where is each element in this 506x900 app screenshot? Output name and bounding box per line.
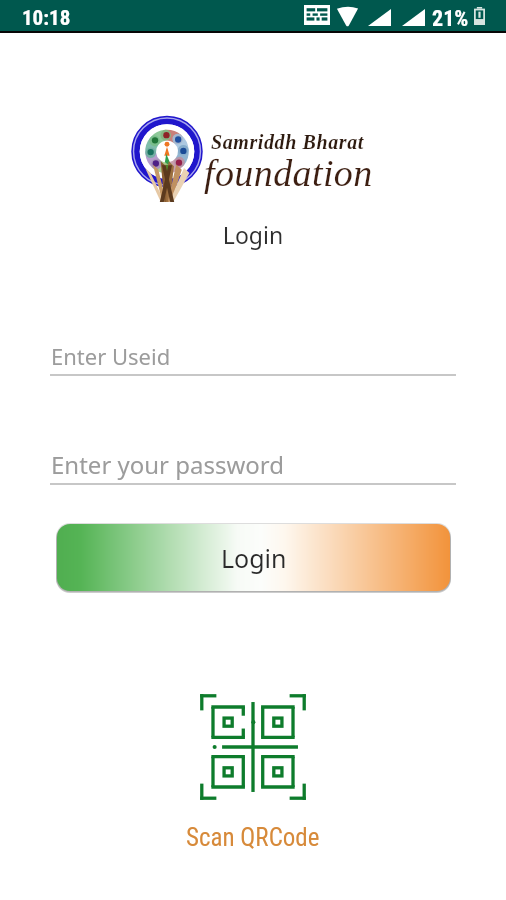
staticText: Login bbox=[0, 219, 506, 250]
staticText: Scan QRCode bbox=[186, 823, 320, 852]
staticText: Samriddh Bharat bbox=[211, 131, 364, 153]
staticText: Login bbox=[221, 541, 287, 575]
other: Scan QR code bbox=[197, 691, 309, 803]
button[interactable]: Enter Useid bbox=[51, 341, 457, 371]
button[interactable]: Login bbox=[57, 524, 450, 591]
staticText: foundation bbox=[204, 152, 373, 194]
staticText: 10:18 bbox=[22, 6, 71, 31]
staticText: 21% bbox=[432, 6, 469, 32]
button[interactable]: Enter your password bbox=[51, 448, 457, 481]
button[interactable]: Scan QR code bbox=[0, 691, 506, 852]
